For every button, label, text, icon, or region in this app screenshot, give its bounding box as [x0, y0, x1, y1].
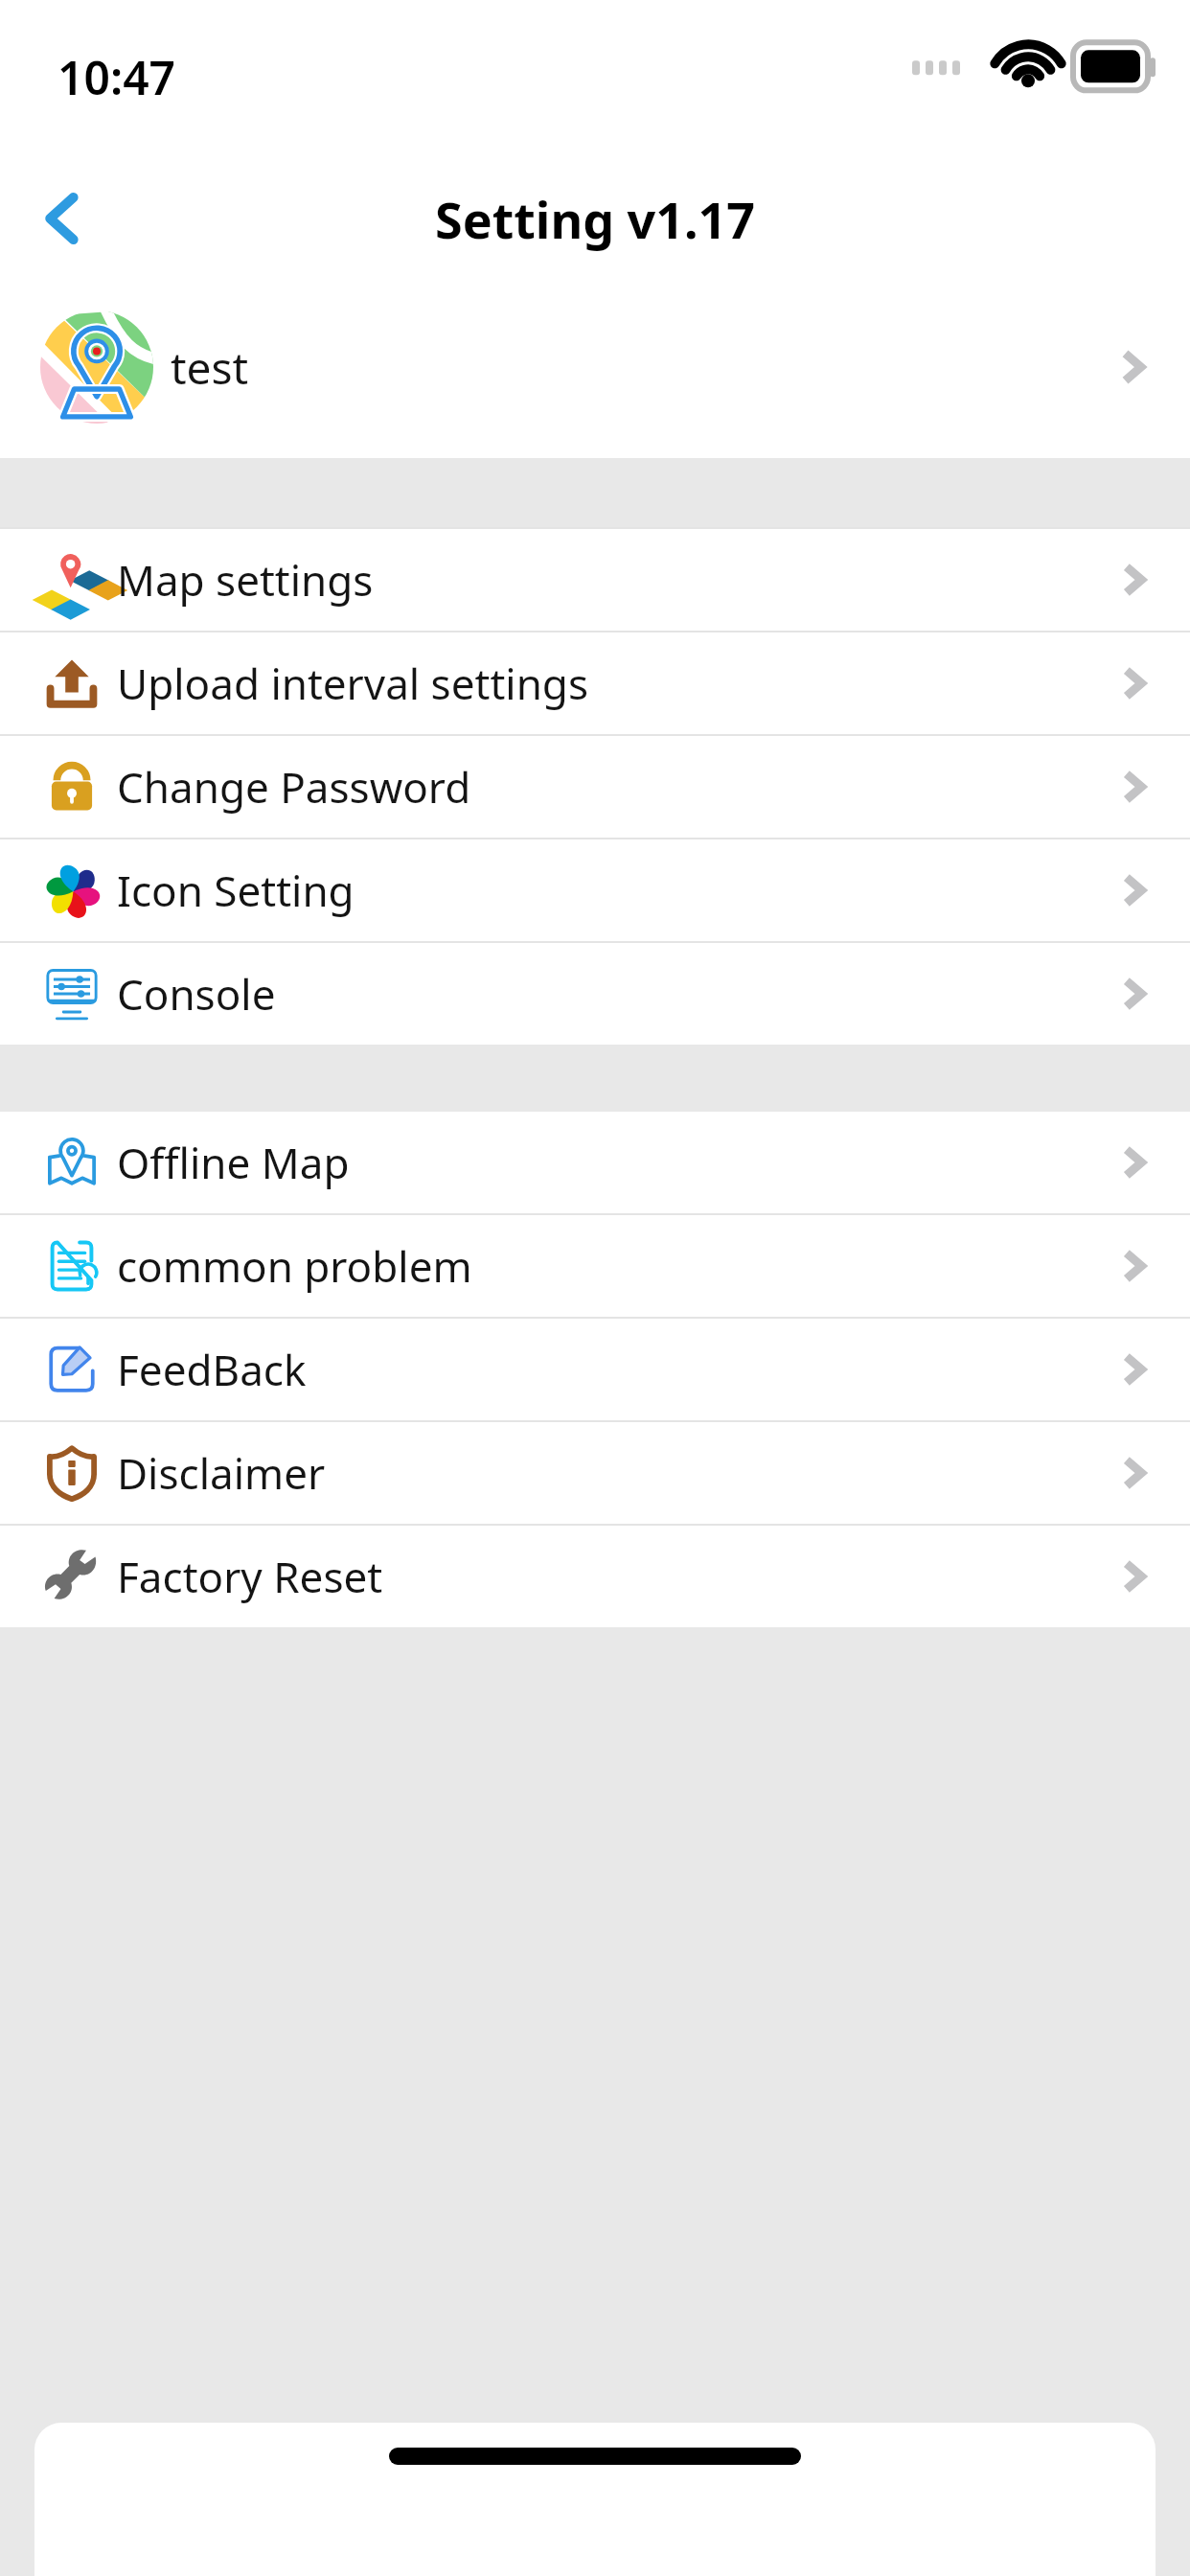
button[interactable]: test [0, 276, 1190, 458]
button[interactable]: common problem [0, 1215, 1190, 1317]
staticText: FeedBack [117, 1341, 307, 1398]
staticText: Icon Setting [117, 862, 355, 919]
staticText: Setting v1.17 [435, 185, 756, 253]
staticText: Factory Reset [117, 1548, 383, 1605]
staticText: common problem [117, 1237, 472, 1295]
button[interactable]: Icon Setting [0, 839, 1190, 941]
button[interactable]: Console [0, 943, 1190, 1045]
staticText: test [171, 337, 249, 398]
staticText: Disclaimer [117, 1444, 326, 1502]
button[interactable]: Map settings [0, 529, 1190, 631]
button[interactable]: Factory Reset [0, 1526, 1190, 1627]
button[interactable]: Offline Map [0, 1112, 1190, 1213]
button[interactable]: Upload interval settings [0, 632, 1190, 734]
staticText: Console [117, 965, 276, 1023]
button[interactable]: FeedBack [0, 1319, 1190, 1420]
staticText: Change Password [117, 758, 471, 816]
button[interactable]: Back [10, 166, 115, 271]
button[interactable]: Disclaimer [0, 1422, 1190, 1524]
staticText: Map settings [117, 551, 374, 609]
button[interactable]: Change Password [0, 736, 1190, 838]
staticText: Upload interval settings [117, 655, 588, 712]
staticText: 10:47 [57, 46, 176, 108]
staticText: Offline Map [117, 1134, 350, 1191]
